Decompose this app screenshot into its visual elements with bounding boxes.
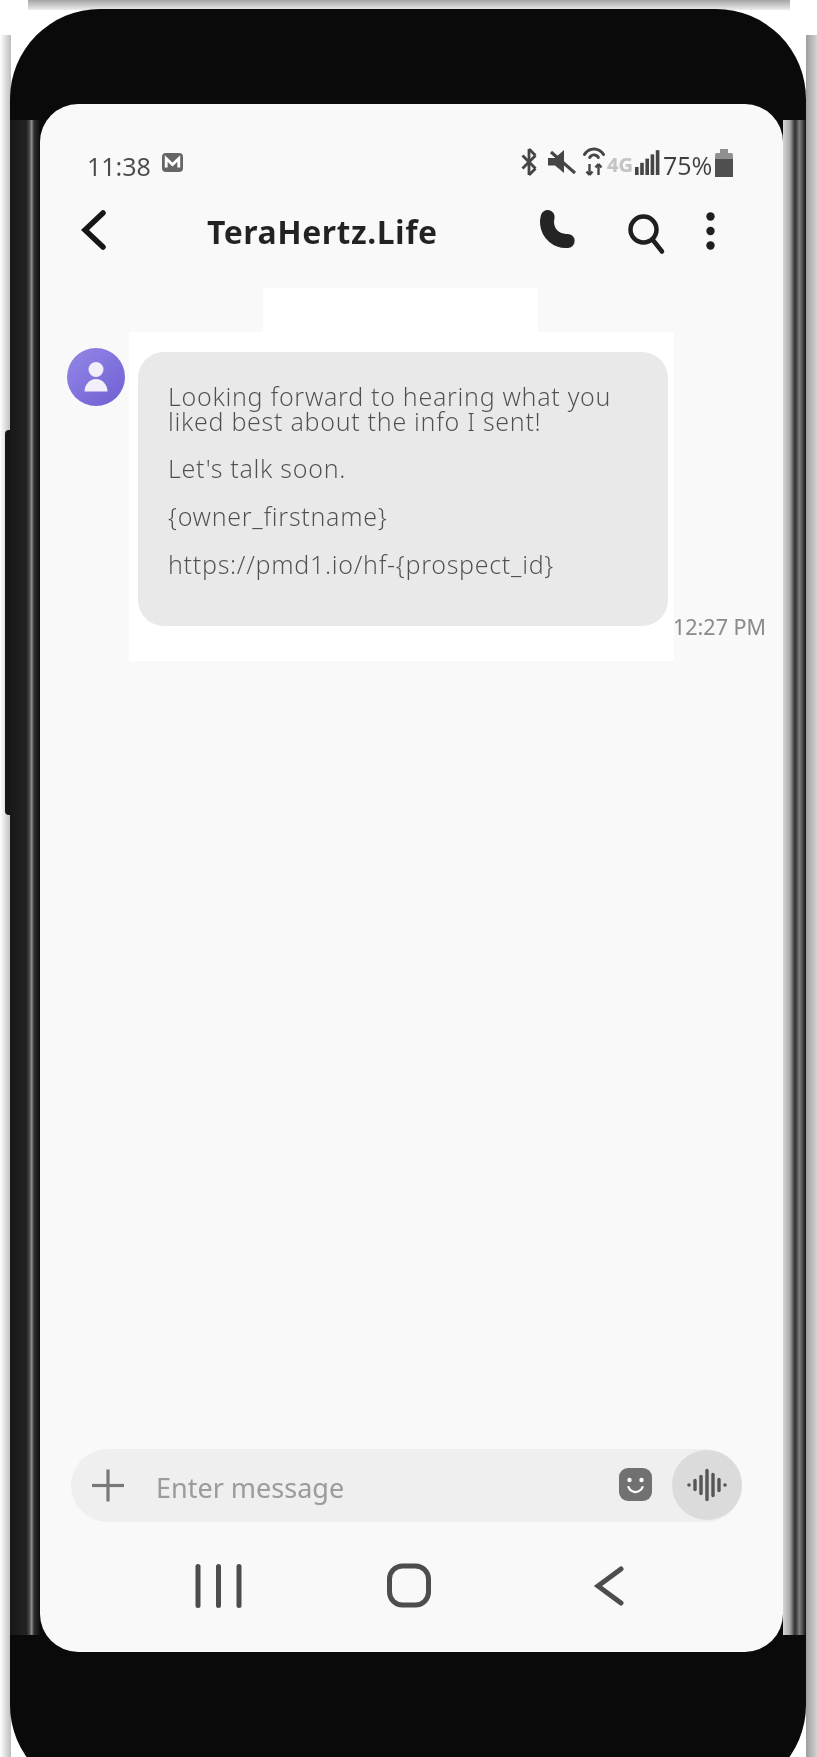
button[interactable] [64, 200, 124, 260]
staticText: 12:27 PM [673, 612, 767, 641]
staticText: {owner_firstname} [168, 499, 388, 533]
staticText: 75% [663, 148, 713, 182]
staticText: Looking forward to hearing what you like… [168, 379, 612, 438]
staticText: TeraHertz.Life [207, 210, 438, 254]
staticText: 4G [607, 151, 633, 178]
button[interactable] [688, 205, 734, 255]
button[interactable] [180, 1555, 256, 1617]
staticText: https://pmd1.io/hf-{prospect_id} [168, 547, 554, 581]
button[interactable] [71, 1449, 742, 1522]
staticText: Enter message [156, 1469, 345, 1506]
button[interactable] [612, 1461, 660, 1509]
staticText: Let's talk soon. [168, 451, 347, 485]
button[interactable] [620, 205, 670, 255]
button[interactable] [585, 1555, 635, 1617]
staticText: 11:38 [87, 149, 151, 183]
button[interactable] [672, 1450, 742, 1520]
button[interactable] [138, 352, 668, 626]
button[interactable] [535, 205, 585, 255]
button[interactable] [380, 1555, 440, 1617]
